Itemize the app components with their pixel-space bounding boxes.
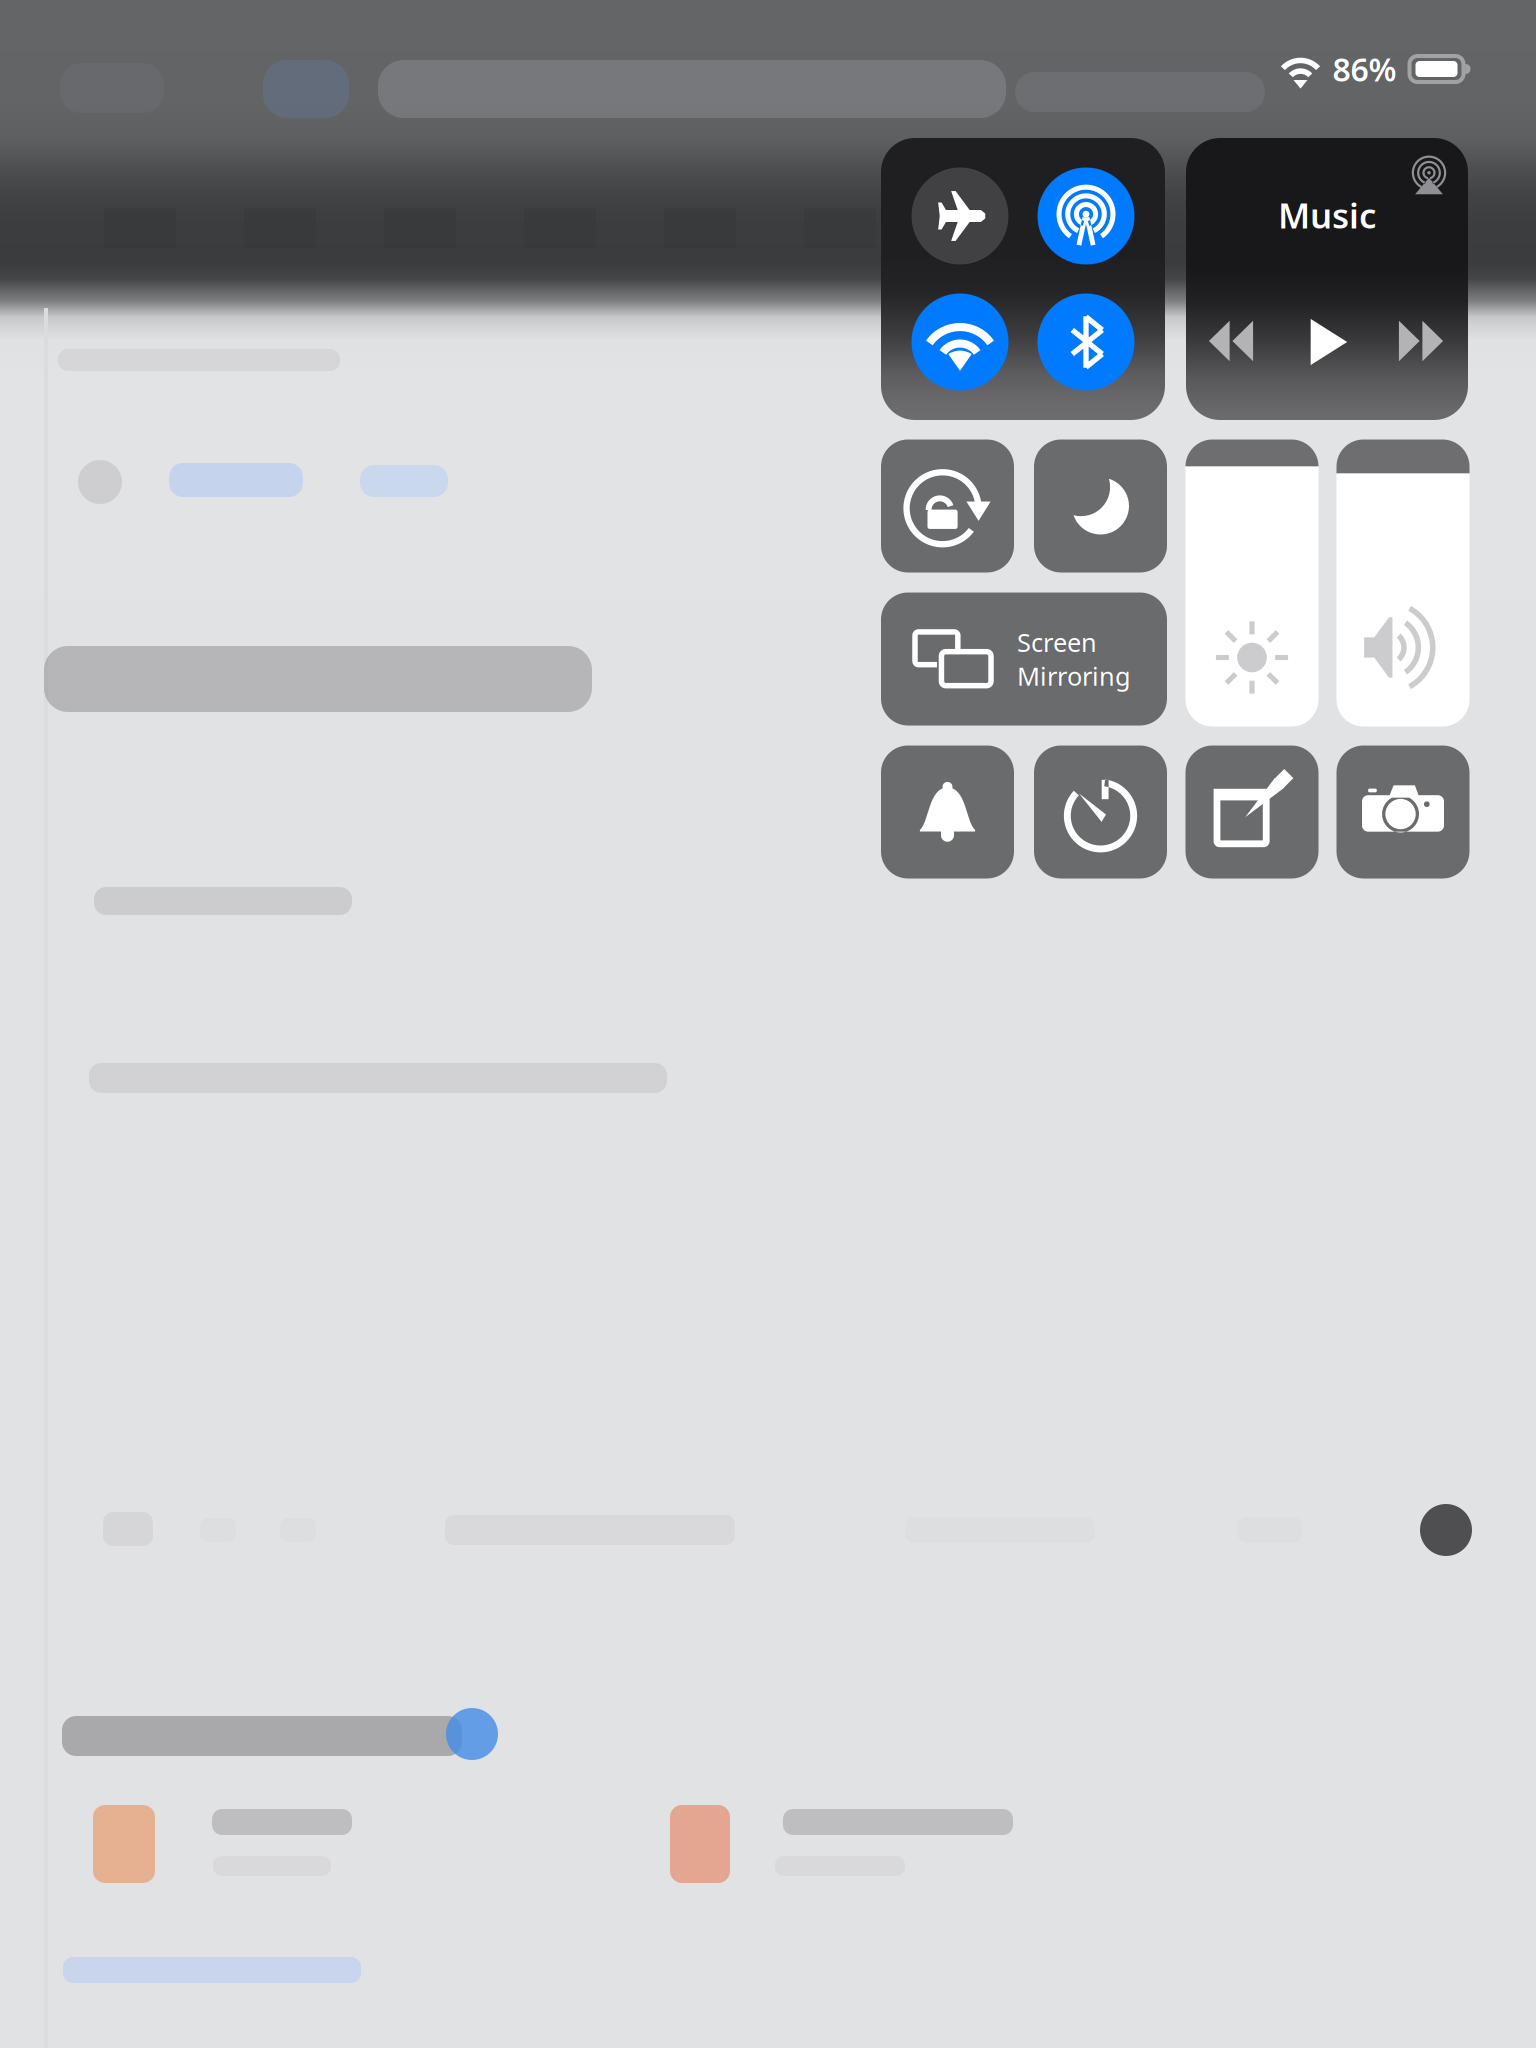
button[interactable]: Volume	[1336, 439, 1469, 726]
staticText: Music	[1278, 192, 1376, 238]
button[interactable]: Camera	[1336, 745, 1469, 878]
button[interactable]: Fast Forward	[1398, 318, 1444, 364]
button[interactable]: AirDrop	[1037, 167, 1134, 264]
button[interactable]: Timer	[1034, 745, 1167, 878]
button[interactable]: Do Not Disturb	[1034, 439, 1167, 572]
button[interactable]: Screen	[881, 592, 1167, 725]
button[interactable]: Rewind	[1208, 318, 1254, 364]
button[interactable]: Wi-Fi	[911, 293, 1008, 390]
button[interactable]: Brightness	[1185, 439, 1318, 726]
button[interactable]: Airplane Mode	[911, 167, 1008, 264]
button[interactable]: Notes	[1185, 745, 1318, 878]
button[interactable]: Alarm	[881, 745, 1014, 878]
button[interactable]: Bluetooth	[1037, 293, 1134, 390]
button[interactable]: Play	[1303, 318, 1351, 366]
button[interactable]: Rotation Lock	[881, 439, 1014, 572]
staticText: Screen	[1017, 625, 1097, 659]
staticText: 86%	[1332, 48, 1396, 90]
button[interactable]: AirPlay	[1410, 157, 1448, 195]
staticText: Mirroring	[1017, 659, 1131, 693]
